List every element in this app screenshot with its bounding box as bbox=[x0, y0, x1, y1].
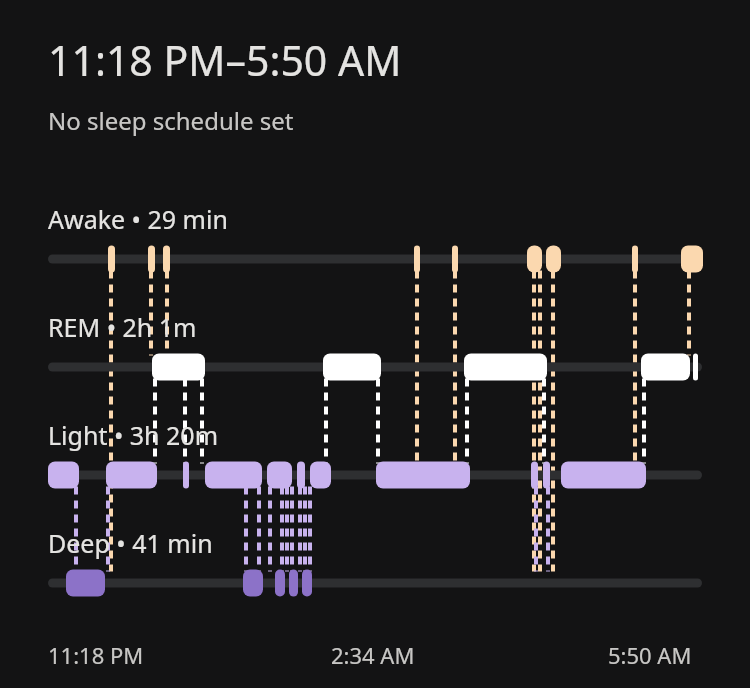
staticText: 5:50 AM bbox=[608, 640, 692, 670]
staticText: Deep • 41 min bbox=[48, 526, 213, 560]
staticText: No sleep schedule set bbox=[48, 104, 294, 137]
staticText: 11:18 PM–5:50 AM bbox=[48, 32, 402, 88]
staticText: REM • 2h 1m bbox=[48, 310, 197, 344]
staticText: Awake • 29 min bbox=[48, 202, 228, 236]
staticText: Light • 3h 20m bbox=[48, 418, 219, 452]
staticText: 2:34 AM bbox=[331, 640, 415, 670]
button[interactable]: Sleep stages chart, 11:18 PM to 5:50 AM bbox=[0, 0, 750, 688]
staticText: 11:18 PM bbox=[48, 640, 144, 670]
